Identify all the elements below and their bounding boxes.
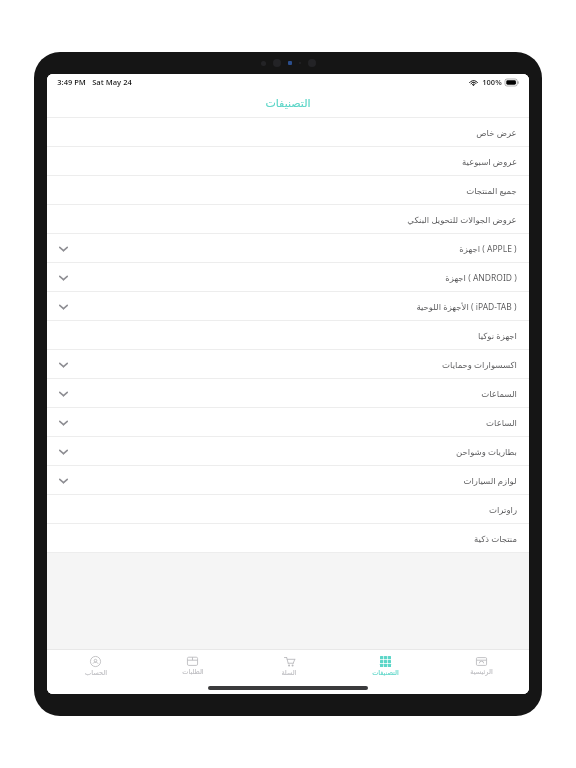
button[interactable]: عروض الجوالات للتحويل البنكي (47, 205, 529, 234)
staticText: اجهزة ( ANDROID ) (445, 272, 517, 284)
staticText: الأجهزة اللوحية ( iPAD-TAB ) (416, 301, 517, 313)
staticText: 100% (482, 77, 502, 87)
button[interactable]: الساعات (47, 408, 529, 437)
other: Expand (57, 475, 69, 487)
button[interactable]: اجهزة ( APPLE ) (47, 234, 529, 263)
staticText: اجهزة ( APPLE ) (459, 243, 517, 255)
button[interactable]: بطاريات وشواحن (47, 437, 529, 466)
staticText: اكسسوارات وحمايات (442, 359, 517, 371)
staticText: عروض الجوالات للتحويل البنكي (407, 214, 517, 226)
staticText: السماعات (481, 389, 517, 399)
staticText: عرض خاص (476, 127, 517, 139)
button[interactable]: اكسسوارات وحمايات (47, 350, 529, 379)
button[interactable]: الرئيسية (433, 650, 529, 682)
button[interactable]: الحساب (47, 650, 144, 682)
staticText: الساعات (486, 418, 517, 428)
staticText: راوترات (489, 505, 517, 515)
button[interactable]: جميع المنتجات (47, 176, 529, 205)
button[interactable]: الطلبات (144, 650, 241, 682)
staticText: السلة (281, 669, 297, 677)
staticText: منتجات ذكية (474, 533, 517, 545)
staticText: لوازم السيارات (463, 475, 517, 487)
button[interactable]: اجهزة ( ANDROID ) (47, 263, 529, 292)
button[interactable]: منتجات ذكية (47, 524, 529, 553)
button[interactable]: اجهزة نوكيا (47, 321, 529, 350)
button[interactable]: السلة (241, 650, 337, 682)
staticText: 3:49 PM (57, 77, 86, 87)
staticText: الرئيسية (470, 668, 493, 676)
button[interactable]: الأجهزة اللوحية ( iPAD-TAB ) (47, 292, 529, 321)
other: Expand (57, 243, 69, 255)
staticText: الحساب (85, 669, 107, 677)
button[interactable]: عرض خاص (47, 118, 529, 147)
staticText: عروض اسبوعية (462, 156, 517, 168)
button[interactable]: التصنيفات (337, 650, 433, 682)
button[interactable]: عروض اسبوعية (47, 147, 529, 176)
button[interactable]: لوازم السيارات (47, 466, 529, 495)
other: Expand (57, 417, 69, 429)
button[interactable]: السماعات (47, 379, 529, 408)
staticText: Sat May 24 (92, 77, 132, 87)
staticText: الطلبات (182, 668, 204, 676)
button[interactable]: راوترات (47, 495, 529, 524)
other: Expand (57, 359, 69, 371)
staticText: التصنيفات (372, 669, 399, 677)
staticText: جميع المنتجات (466, 185, 517, 197)
staticText: اجهزة نوكيا (478, 330, 517, 342)
other: Expand (57, 301, 69, 313)
other: Expand (57, 388, 69, 400)
other: Expand (57, 272, 69, 284)
staticText: بطاريات وشواحن (456, 446, 517, 458)
other: Expand (57, 446, 69, 458)
staticText: التصنيفات (265, 97, 311, 110)
